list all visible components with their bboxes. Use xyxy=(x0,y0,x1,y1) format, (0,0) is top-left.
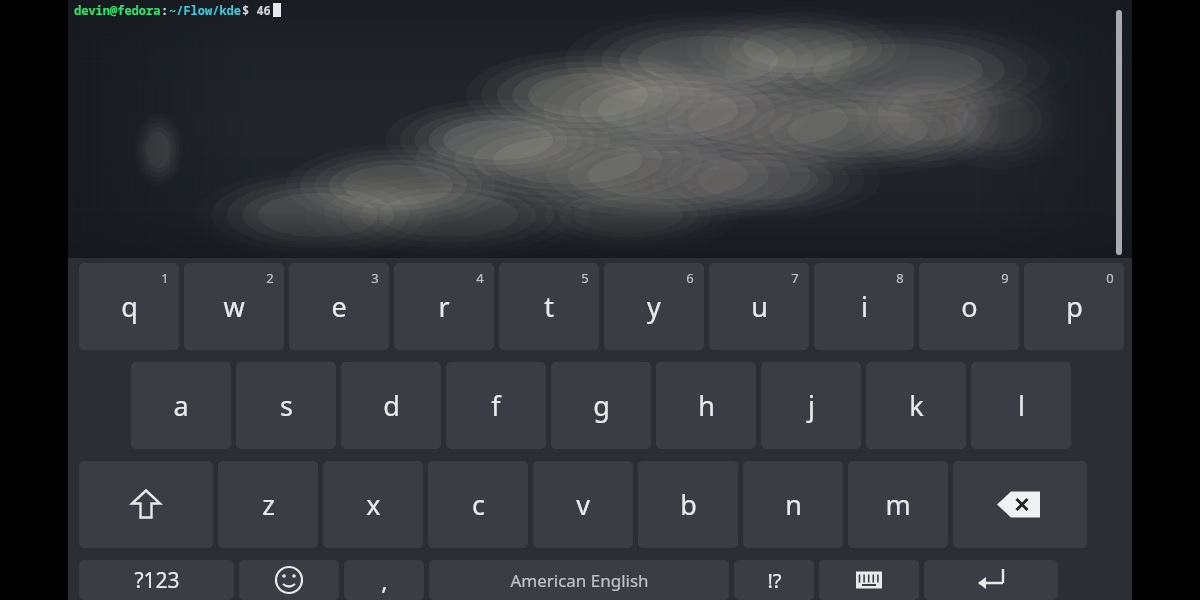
button[interactable]: y xyxy=(604,263,704,350)
staticText: a xyxy=(173,387,189,424)
button[interactable]: e xyxy=(289,263,389,350)
button[interactable]: q xyxy=(79,263,179,350)
staticText: y xyxy=(647,288,661,325)
staticText: 6 xyxy=(686,269,694,287)
button[interactable]: n xyxy=(743,461,843,548)
button[interactable]: b xyxy=(638,461,738,548)
staticText: , xyxy=(381,564,388,597)
button[interactable]: a xyxy=(131,362,231,449)
staticText: j xyxy=(808,387,815,424)
staticText: i xyxy=(861,288,868,325)
staticText: l xyxy=(1018,387,1025,424)
button[interactable]: u xyxy=(709,263,809,350)
staticText: o xyxy=(961,288,978,325)
button[interactable]: m xyxy=(848,461,948,548)
button[interactable]: Emoji xyxy=(239,560,339,600)
button[interactable]: Switch keyboard xyxy=(819,560,919,600)
staticText: 2 xyxy=(266,269,274,287)
staticText: w xyxy=(223,288,245,325)
button[interactable]: r xyxy=(394,263,494,350)
staticText: v xyxy=(576,486,590,523)
button[interactable]: d xyxy=(341,362,441,449)
button[interactable]: !? xyxy=(734,560,814,600)
button[interactable]: p xyxy=(1024,263,1124,350)
button[interactable]: g xyxy=(551,362,651,449)
button[interactable]: American English xyxy=(429,560,729,600)
button[interactable]: w xyxy=(184,263,284,350)
staticText: x xyxy=(366,486,381,523)
staticText: f xyxy=(491,387,501,424)
staticText: t xyxy=(544,288,554,325)
staticText: 3 xyxy=(371,269,379,287)
staticText: 9 xyxy=(1001,269,1009,287)
staticText: ?123 xyxy=(134,566,180,595)
staticText: g xyxy=(593,387,610,424)
staticText: u xyxy=(751,288,768,325)
staticText: 4 xyxy=(476,269,484,287)
staticText: h xyxy=(698,387,715,424)
button[interactable]: c xyxy=(428,461,528,548)
button[interactable]: Enter xyxy=(924,560,1058,600)
button[interactable]: Shift xyxy=(79,461,213,548)
staticText: : xyxy=(161,2,169,18)
staticText: n xyxy=(785,486,802,523)
staticText: $ 46 xyxy=(242,2,271,18)
staticText: s xyxy=(280,387,293,424)
staticText: k xyxy=(909,387,924,424)
staticText: ~/Flow/kde xyxy=(169,2,242,18)
button[interactable]: s xyxy=(236,362,336,449)
button[interactable]: j xyxy=(761,362,861,449)
staticText: m xyxy=(885,486,911,523)
button[interactable]: , xyxy=(344,560,424,600)
staticText: American English xyxy=(510,569,649,592)
staticText: 7 xyxy=(791,269,799,287)
button[interactable]: k xyxy=(866,362,966,449)
button[interactable]: Backspace xyxy=(953,461,1087,548)
staticText: e xyxy=(331,288,347,325)
staticText: p xyxy=(1066,288,1083,325)
button[interactable]: l xyxy=(971,362,1071,449)
staticText: d xyxy=(383,387,400,424)
staticText: 1 xyxy=(161,269,169,287)
staticText: 5 xyxy=(581,269,589,287)
staticText: devin@fedora xyxy=(74,2,161,18)
button[interactable]: x xyxy=(323,461,423,548)
staticText: 8 xyxy=(896,269,904,287)
staticText: c xyxy=(472,486,485,523)
button[interactable]: f xyxy=(446,362,546,449)
button[interactable]: o xyxy=(919,263,1019,350)
staticText: z xyxy=(262,486,275,523)
staticText: 0 xyxy=(1106,269,1114,287)
button[interactable]: t xyxy=(499,263,599,350)
staticText: b xyxy=(680,486,697,523)
staticText: r xyxy=(438,288,450,325)
staticText: q xyxy=(121,288,138,325)
button[interactable]: z xyxy=(218,461,318,548)
button[interactable]: h xyxy=(656,362,756,449)
staticText: !? xyxy=(767,567,782,594)
button[interactable]: i xyxy=(814,263,914,350)
button[interactable]: ?123 xyxy=(79,560,234,600)
button[interactable]: v xyxy=(533,461,633,548)
